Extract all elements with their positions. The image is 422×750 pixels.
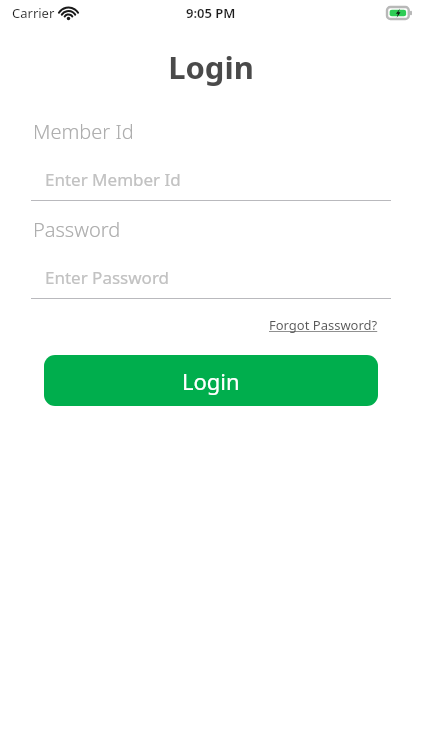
staticText: Enter Password — [45, 266, 170, 289]
staticText: Member Id — [33, 118, 422, 145]
staticText: Forgot Password? — [269, 316, 378, 334]
staticText: Login — [182, 366, 240, 396]
staticText: Carrier — [12, 4, 55, 22]
staticText: Enter Member Id — [45, 168, 181, 191]
button[interactable]: Login — [44, 355, 378, 406]
button[interactable]: Forgot Password? — [267, 313, 380, 337]
button[interactable]: Enter Member Id — [31, 163, 391, 201]
button[interactable]: Enter Password — [31, 261, 391, 299]
staticText: Password — [33, 216, 422, 243]
staticText: 9:05 PM — [186, 4, 236, 22]
staticText: Login — [0, 46, 422, 88]
